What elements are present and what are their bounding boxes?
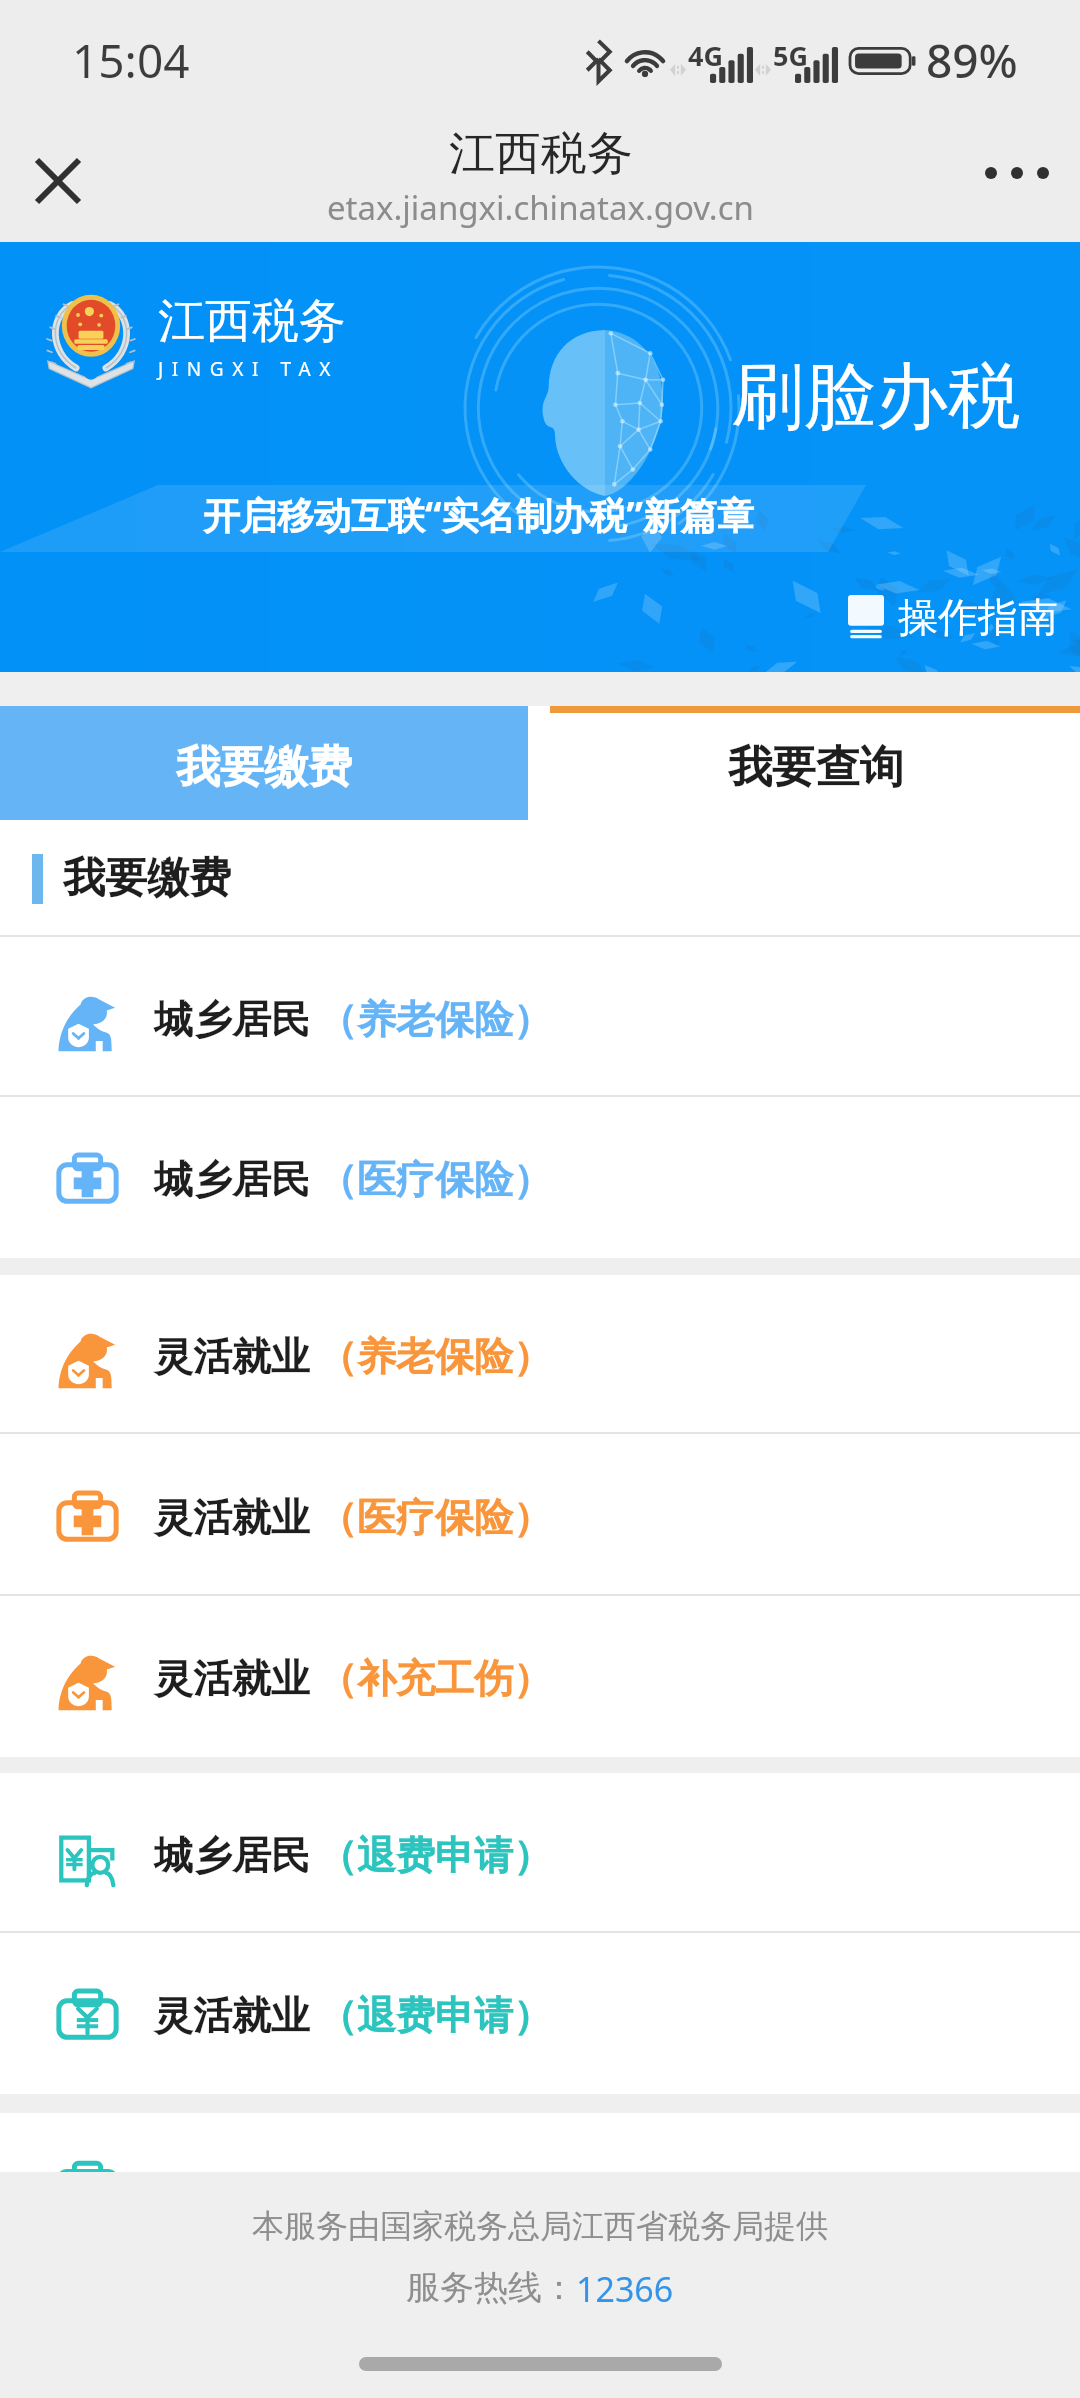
staticText: 89% — [926, 29, 1018, 92]
staticText: 灵活就业 — [154, 1493, 310, 1542]
staticText: 本服务由国家税务总局江西省税务局提供 — [252, 2206, 828, 2246]
staticText: 江西税务 — [449, 125, 633, 183]
button[interactable]: 城乡居民 — [0, 1097, 1080, 1258]
staticText: 城乡居民 — [154, 995, 310, 1044]
staticText: 12366 — [576, 2266, 674, 2312]
staticText: 刷脸办税 — [732, 352, 1020, 443]
staticText: 城乡居民 — [154, 1831, 310, 1880]
staticText: （养老保险） — [318, 1332, 552, 1381]
button[interactable]: 我要缴费 — [0, 706, 528, 820]
staticText: 服务热线： — [406, 2266, 576, 2309]
staticText: 5G — [773, 37, 808, 74]
staticText: 我要查询 — [728, 740, 904, 795]
staticText: （退费申请） — [318, 1991, 552, 2040]
button[interactable]: 操作指南 — [848, 592, 1058, 642]
staticText: 15:04 — [72, 29, 190, 92]
button[interactable]: 灵活就业 — [0, 1933, 1080, 2094]
staticText: （医疗保险） — [318, 1155, 552, 1204]
staticText: 我要缴费 — [176, 740, 352, 795]
staticText: 我要缴费 — [63, 852, 231, 905]
staticText: （养老保险） — [318, 995, 552, 1044]
staticText: （退费申请） — [318, 1831, 552, 1880]
button[interactable]: More options — [970, 126, 1064, 220]
staticText: 操作指南 — [898, 592, 1058, 642]
staticText: （补充工伤） — [318, 1654, 552, 1703]
staticText: （医疗保险） — [318, 1493, 552, 1542]
staticText: etax.jiangxi.chinatax.gov.cn — [327, 185, 754, 230]
button[interactable]: 城乡居民 — [0, 937, 1080, 1097]
staticText: 江西税务 — [158, 292, 346, 351]
staticText: JINGXI TAX — [158, 356, 339, 382]
button[interactable]: 江西税务 — [0, 242, 1080, 672]
button[interactable]: 灵活就业 — [0, 1596, 1080, 1757]
button[interactable]: 灵活就业 — [0, 1434, 1080, 1596]
button[interactable]: Close — [12, 135, 104, 227]
button[interactable]: 城乡居民 — [0, 1773, 1080, 1933]
button[interactable]: 我要查询 — [528, 706, 1080, 820]
staticText: 4G — [688, 37, 723, 74]
button[interactable]: 灵活就业 — [0, 1275, 1080, 1434]
staticText: 灵活就业 — [154, 1332, 310, 1381]
staticText: 灵活就业 — [154, 1654, 310, 1703]
staticText: 开启移动互联“实名制办税”新篇章 — [203, 489, 754, 540]
staticText: 灵活就业 — [154, 1991, 310, 2040]
staticText: 城乡居民 — [154, 1155, 310, 1204]
